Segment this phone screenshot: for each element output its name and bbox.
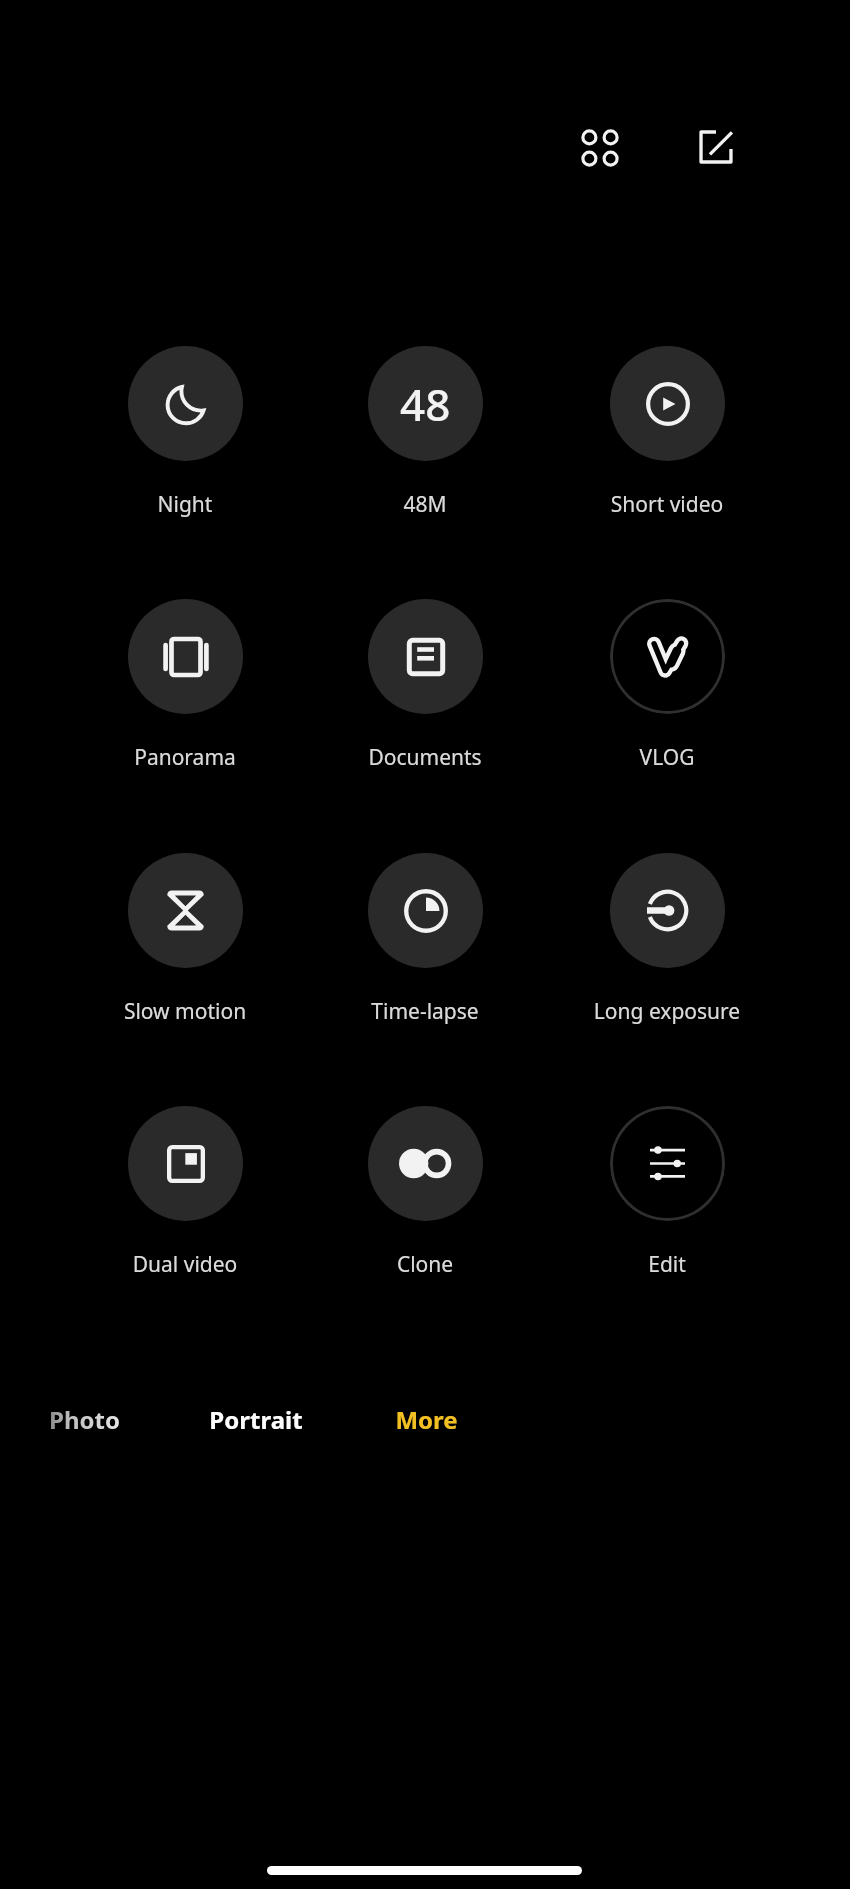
button[interactable]: Camera modes grid	[568, 116, 632, 180]
staticText: Photo	[49, 1403, 120, 1436]
button[interactable]: Dual video	[85, 1106, 285, 1279]
staticText: Portrait	[209, 1403, 303, 1436]
staticText: Short video	[567, 490, 767, 519]
button[interactable]: More	[346, 1390, 506, 1448]
staticText: Edit	[567, 1250, 767, 1279]
staticText: Panorama	[85, 743, 285, 772]
button[interactable]: Time-lapse	[325, 853, 525, 1026]
staticText: 48M	[325, 490, 525, 519]
button[interactable]: Short video	[567, 346, 767, 519]
button[interactable]: Panorama	[85, 599, 285, 772]
button[interactable]: 48	[325, 346, 525, 519]
button[interactable]: Edit modes	[684, 115, 748, 179]
button[interactable]: Clone	[325, 1106, 525, 1279]
staticText: Dual video	[85, 1250, 285, 1279]
button[interactable]: Documents	[325, 599, 525, 772]
staticText: 48	[400, 374, 451, 434]
button[interactable]: Long exposure	[567, 853, 767, 1026]
button[interactable]: Photo	[4, 1390, 164, 1448]
button[interactable]: Night	[85, 346, 285, 519]
button[interactable]: Edit	[567, 1106, 767, 1279]
staticText: Time-lapse	[325, 997, 525, 1026]
staticText: Long exposure	[567, 997, 767, 1026]
staticText: Documents	[325, 743, 525, 772]
staticText: Night	[85, 490, 285, 519]
staticText: Clone	[325, 1250, 525, 1279]
button[interactable]: Portrait	[176, 1390, 336, 1448]
staticText: VLOG	[567, 743, 767, 772]
button[interactable]: VLOG	[567, 599, 767, 772]
button[interactable]: Slow motion	[85, 853, 285, 1026]
staticText: Slow motion	[85, 997, 285, 1026]
staticText: More	[395, 1403, 458, 1436]
